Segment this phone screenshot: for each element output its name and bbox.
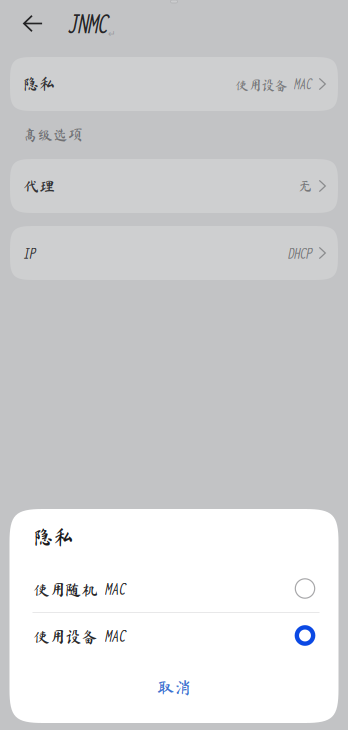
button[interactable]: 代理 [10, 159, 338, 213]
staticText: 取消 [157, 679, 191, 696]
staticText: 使用设备 MAC [236, 76, 312, 92]
button[interactable]: 使用设备 MAC [9, 613, 338, 658]
button[interactable]: 使用随机 MAC [9, 565, 338, 612]
staticText: 无 [299, 179, 312, 193]
staticText: 代理 [23, 178, 55, 194]
staticText: IP [23, 244, 35, 262]
staticText: 使用设备 MAC [33, 626, 125, 645]
button[interactable]: Back [23, 3, 43, 43]
staticText: 隐私 [23, 76, 55, 92]
button[interactable]: 隐私 [10, 57, 338, 111]
staticText: 隐私 [33, 527, 73, 547]
staticText: DHCP [288, 244, 312, 262]
staticText: JNMC [67, 8, 107, 39]
staticText: ↵ [108, 28, 116, 39]
staticText: 高级选项 [23, 128, 83, 142]
button[interactable]: 取消 [9, 664, 338, 711]
button[interactable]: IP [10, 226, 338, 280]
staticText: 使用随机 MAC [33, 579, 125, 598]
